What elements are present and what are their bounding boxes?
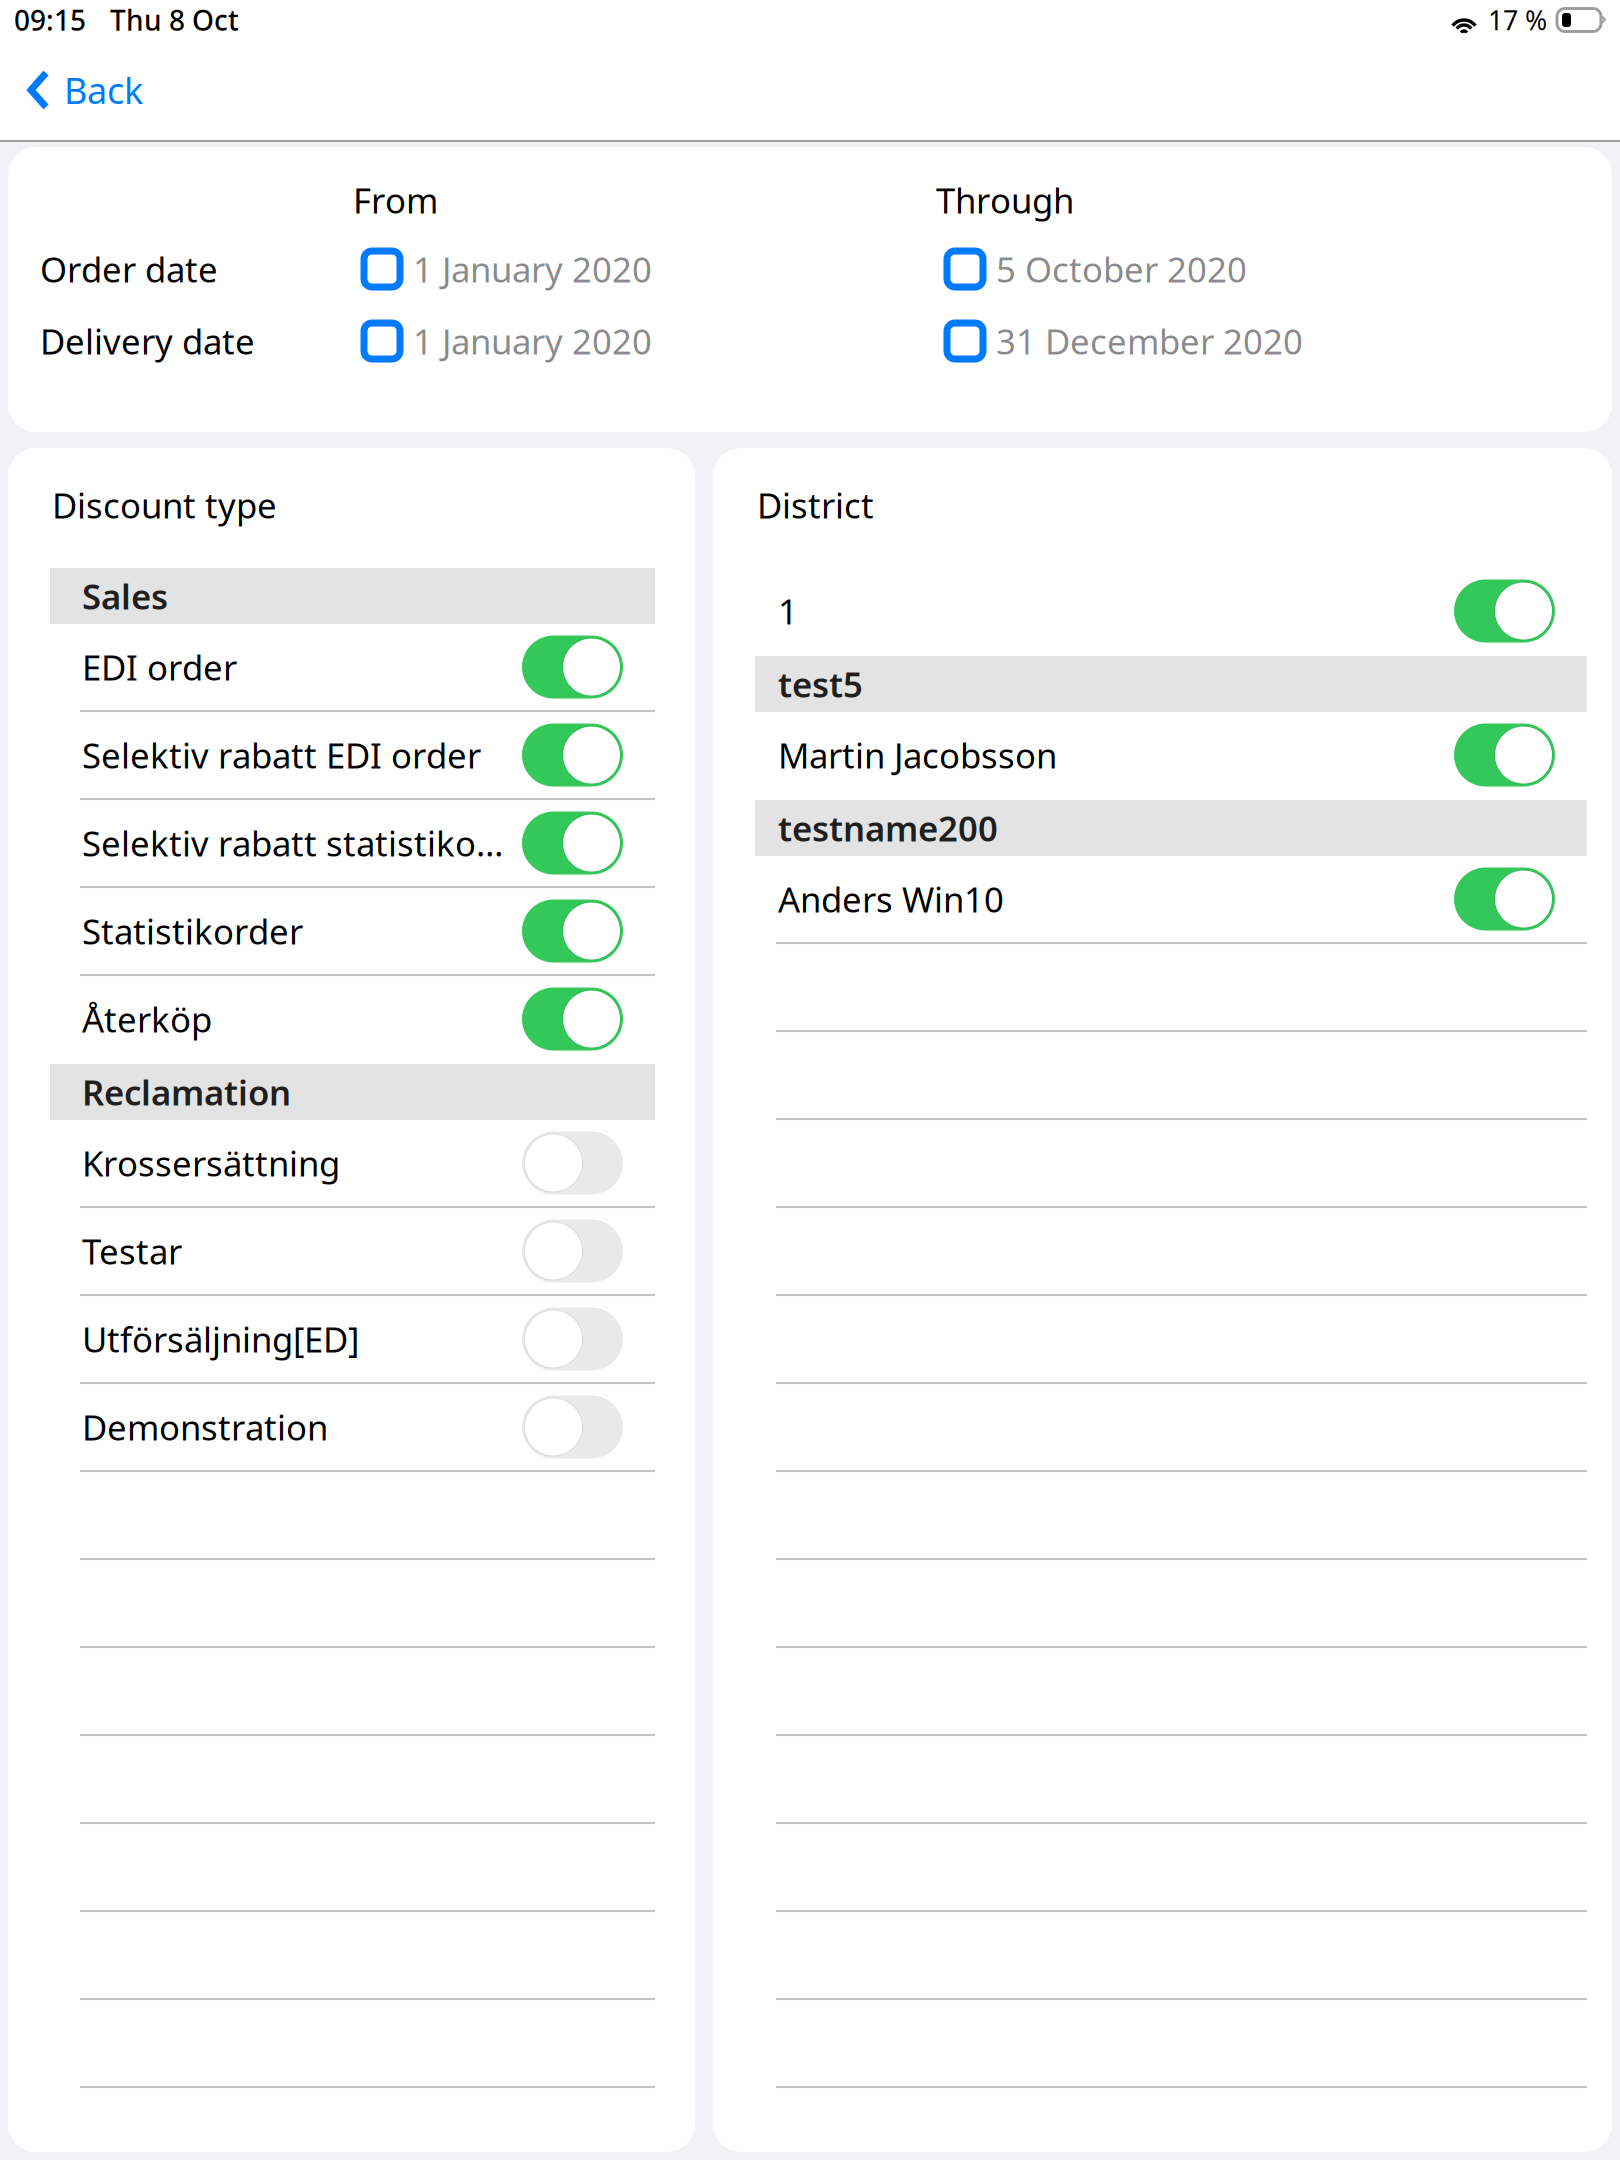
staticText: Through (936, 177, 1074, 223)
button[interactable]: Selektiv rabatt EDI order (8, 712, 695, 798)
button[interactable]: 5 October 2020 (944, 246, 1247, 292)
staticText: Testar (82, 1228, 182, 1274)
staticText: Reclamation (82, 1069, 291, 1115)
button[interactable]: Statistikorder (8, 888, 695, 974)
button[interactable]: Utförsäljning[ED] (8, 1296, 695, 1382)
staticText: Thu 8 Oct (110, 1, 239, 39)
staticText: Delivery date (40, 318, 255, 364)
staticText: 17 % (1488, 2, 1547, 38)
button[interactable]: Selektiv rabatt statistikord… (8, 800, 695, 886)
staticText: 31 December 2020 (996, 318, 1303, 364)
staticText: Sales (82, 573, 168, 619)
button[interactable]: Testar (8, 1208, 695, 1294)
staticText: EDI order (82, 644, 237, 690)
button[interactable]: Statistikorder (522, 899, 623, 962)
button[interactable]: Martin Jacobsson (1454, 723, 1555, 786)
staticText: Discount type (52, 482, 277, 528)
staticText: From (353, 177, 438, 223)
button[interactable]: 1 (713, 568, 1612, 654)
button[interactable]: Krossersättning (522, 1131, 623, 1194)
button[interactable]: Demonstration (522, 1395, 623, 1458)
button[interactable]: Återköp (522, 987, 623, 1050)
button[interactable]: Back (0, 40, 163, 140)
button[interactable]: Återköp (8, 976, 695, 1062)
button[interactable]: Martin Jacobsson (713, 712, 1612, 798)
button[interactable]: 1 (1454, 579, 1555, 642)
staticText: Martin Jacobsson (778, 732, 1057, 778)
staticText: Selektiv rabatt EDI order (82, 732, 481, 778)
button[interactable]: Testar (522, 1219, 623, 1282)
button[interactable]: Demonstration (8, 1384, 695, 1470)
button[interactable]: Utförsäljning[ED] (522, 1307, 623, 1370)
staticText: District (757, 482, 874, 528)
button[interactable]: 31 December 2020 (944, 318, 1303, 364)
staticText: 1 January 2020 (413, 318, 652, 364)
staticText: Order date (40, 246, 218, 292)
button[interactable]: EDI order (522, 635, 623, 698)
staticText: testname200 (778, 805, 998, 851)
button[interactable]: Krossersättning (8, 1120, 695, 1206)
staticText: Back (64, 66, 143, 114)
staticText: Selektiv rabatt statistikord… (82, 820, 514, 866)
staticText: Återköp (82, 996, 212, 1042)
staticText: Statistikorder (82, 908, 303, 954)
button[interactable]: 1 January 2020 (361, 246, 652, 292)
button[interactable]: 1 January 2020 (361, 318, 652, 364)
button[interactable]: EDI order (8, 624, 695, 710)
staticText: 09:15 (14, 1, 86, 39)
staticText: 1 (778, 588, 798, 634)
staticText: Krossersättning (82, 1140, 340, 1186)
staticText: Utförsäljning[ED] (82, 1316, 359, 1362)
staticText: test5 (778, 661, 863, 707)
button[interactable]: Selektiv rabatt statistikord… (522, 811, 623, 874)
staticText: Demonstration (82, 1404, 328, 1450)
button[interactable]: Anders Win10 (1454, 867, 1555, 930)
staticText: Anders Win10 (778, 876, 1004, 922)
staticText: 1 January 2020 (413, 246, 652, 292)
staticText: 5 October 2020 (996, 246, 1247, 292)
button[interactable]: Selektiv rabatt EDI order (522, 723, 623, 786)
button[interactable]: Anders Win10 (713, 856, 1612, 942)
